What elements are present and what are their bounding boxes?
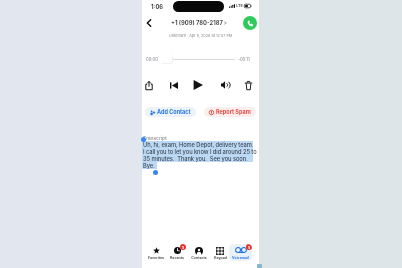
- staticText: I call you to let you know I did around …: [143, 148, 257, 155]
- staticText: Bye.: [143, 162, 155, 169]
- button[interactable]: Share: [142, 78, 156, 92]
- button[interactable]: Add Contact: [145, 107, 196, 117]
- button[interactable]: Rewind: [167, 78, 181, 92]
- button[interactable]: Favorites: [146, 244, 166, 261]
- staticText: Recents: [170, 256, 184, 260]
- button[interactable]: Report Spam: [204, 107, 256, 117]
- button[interactable]: Play: [190, 77, 206, 93]
- button[interactable]: Speaker volume: [218, 78, 232, 92]
- button[interactable]: Call back: [243, 16, 257, 30]
- staticText: +1 (909) 780-2187: [171, 19, 223, 26]
- staticText: -00:11: [238, 57, 250, 62]
- staticText: 1: [182, 245, 184, 250]
- button[interactable]: +1 (909) 780-2187: [171, 19, 227, 26]
- staticText: 1: [248, 245, 250, 250]
- staticText: Report Spam: [216, 109, 251, 116]
- button[interactable]: Back: [143, 17, 155, 29]
- staticText: 00:00: [146, 57, 158, 62]
- button[interactable]: Contacts: [189, 244, 209, 261]
- staticText: Keypad: [214, 256, 227, 260]
- staticText: 1:06: [151, 3, 164, 10]
- staticText: Transcript: [143, 135, 167, 141]
- staticText: Unknown · Apr 9, 2026 at 12:57 PM: [169, 33, 233, 38]
- staticText: Uh, hi, exam, Home Depot, delivery team.: [143, 141, 254, 148]
- button[interactable]: 1: [229, 244, 252, 261]
- button[interactable]: Keypad: [210, 244, 230, 261]
- staticText: Add Contact: [157, 109, 191, 116]
- button[interactable]: 1: [167, 244, 187, 261]
- staticText: 35 minutes. Thank you. See you soon.: [143, 155, 248, 162]
- staticText: Favorites: [148, 256, 164, 260]
- staticText: Contacts: [191, 256, 207, 260]
- staticText: LTE: [236, 3, 243, 8]
- button[interactable]: Delete: [241, 78, 255, 92]
- staticText: Voicemail: [232, 256, 249, 260]
